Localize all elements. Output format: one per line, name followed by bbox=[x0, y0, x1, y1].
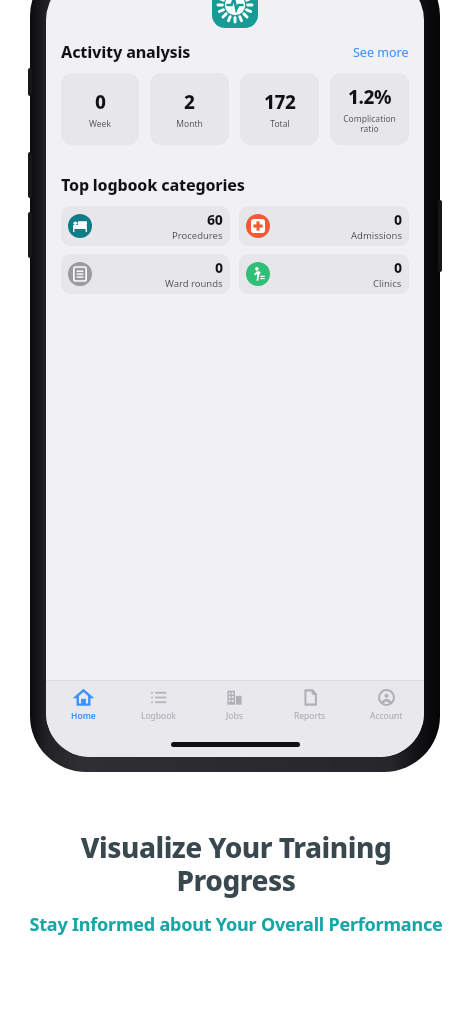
staticText: Week bbox=[89, 118, 111, 130]
staticText: Stay Informed about Your Overall Perform… bbox=[29, 912, 443, 937]
button[interactable]: 0 bbox=[61, 73, 139, 145]
staticText: Top logbook categories bbox=[61, 174, 245, 196]
staticText: 1.2% bbox=[348, 84, 391, 110]
button[interactable]: 172 bbox=[240, 73, 319, 145]
staticText: Home bbox=[71, 710, 96, 722]
staticText: 172 bbox=[264, 89, 296, 115]
staticText: 2 bbox=[184, 89, 195, 115]
staticText: Activity analysis bbox=[61, 41, 191, 63]
button[interactable]: Jobs bbox=[196, 681, 272, 731]
button[interactable]: Account bbox=[348, 681, 424, 731]
button[interactable]: See more bbox=[353, 44, 409, 61]
staticText: Ward rounds bbox=[165, 277, 223, 290]
button[interactable]: Reports bbox=[272, 681, 348, 731]
staticText: Jobs bbox=[226, 710, 243, 722]
staticText: 0 bbox=[215, 258, 223, 277]
staticText: Logbook bbox=[141, 710, 176, 722]
staticText: 0 bbox=[394, 258, 402, 277]
button[interactable]: 2 bbox=[150, 73, 229, 145]
staticText: Month bbox=[176, 118, 203, 130]
staticText: Reports bbox=[294, 710, 326, 722]
button[interactable]: 1.2% bbox=[330, 73, 409, 145]
staticText: 0 bbox=[394, 210, 402, 229]
button[interactable]: 60 bbox=[61, 206, 230, 246]
button[interactable]: 0 bbox=[61, 254, 230, 294]
staticText: See more bbox=[353, 44, 409, 61]
staticText: Procedures bbox=[172, 229, 223, 242]
staticText: Complication ratio bbox=[343, 113, 396, 134]
staticText: 60 bbox=[207, 210, 223, 229]
button[interactable]: 0 bbox=[239, 254, 409, 294]
staticText: Admissions bbox=[351, 229, 402, 242]
staticText: 0 bbox=[95, 89, 106, 115]
button[interactable]: 0 bbox=[239, 206, 409, 246]
staticText: Visualize Your Training Progress bbox=[28, 828, 444, 899]
staticText: Clinics bbox=[373, 277, 402, 290]
staticText: Account bbox=[370, 710, 403, 722]
button[interactable]: Home bbox=[46, 681, 121, 731]
staticText: Total bbox=[270, 118, 290, 130]
button[interactable]: Logbook bbox=[121, 681, 196, 731]
